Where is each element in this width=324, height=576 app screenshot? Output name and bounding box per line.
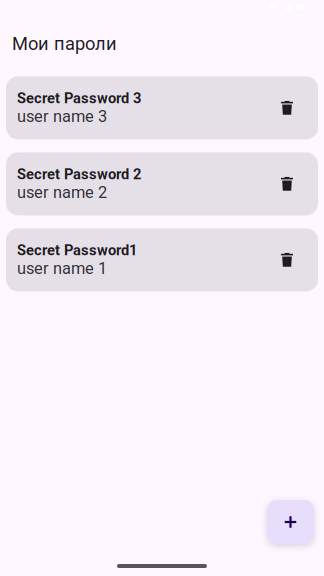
- button[interactable]: Delete Secret Password 3: [267, 86, 307, 130]
- staticText: Secret Password 2: [17, 166, 141, 183]
- staticText: Secret Password 3: [17, 90, 141, 107]
- staticText: user name 1: [17, 259, 107, 278]
- button[interactable]: Delete Secret Password1: [267, 238, 307, 282]
- staticText: Мои пароли: [12, 33, 117, 54]
- staticText: user name 2: [17, 183, 107, 202]
- button[interactable]: Secret Password 3: [6, 76, 318, 139]
- button[interactable]: Secret Password1: [6, 228, 318, 291]
- staticText: user name 3: [17, 107, 107, 126]
- button[interactable]: Secret Password 2: [6, 152, 318, 215]
- staticText: Secret Password1: [17, 242, 137, 259]
- button[interactable]: Delete Secret Password 2: [267, 162, 307, 206]
- button[interactable]: Add password: [267, 500, 314, 544]
